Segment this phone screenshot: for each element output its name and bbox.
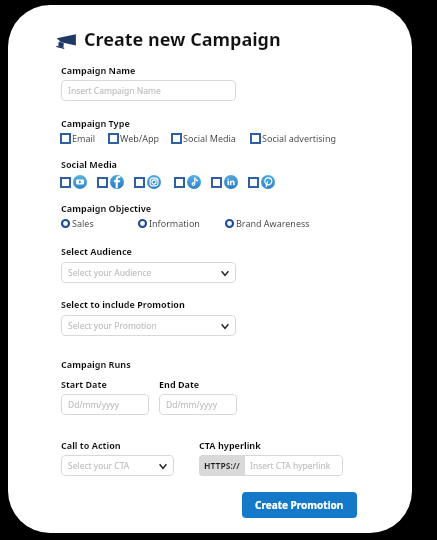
- staticText: Dd/mm/yyyy: [68, 399, 119, 411]
- button[interactable]: Brand Awareness: [225, 217, 310, 229]
- button[interactable]: HTTPS://: [199, 455, 343, 476]
- button[interactable]: Social Media: [172, 132, 236, 144]
- staticText: Campaign Objective: [61, 202, 152, 214]
- staticText: Campaign Runs: [61, 358, 131, 370]
- staticText: CTA hyperlink: [199, 439, 261, 451]
- button[interactable]: Insert Campaign Name: [61, 80, 236, 101]
- staticText: Start Date: [61, 378, 107, 390]
- staticText: Campaign Name: [61, 64, 136, 76]
- button[interactable]: Select your CTA: [61, 455, 174, 476]
- button[interactable]: LinkedIn: [212, 175, 238, 189]
- staticText: Social Media: [61, 158, 117, 170]
- button[interactable]: Information: [138, 217, 200, 229]
- staticText: Email: [72, 132, 96, 144]
- staticText: Social advertising: [262, 132, 336, 144]
- button[interactable]: Select your Promotion: [61, 315, 236, 336]
- button[interactable]: Dd/mm/yyyy: [61, 394, 149, 415]
- button[interactable]: Web/App: [109, 132, 159, 144]
- button[interactable]: TikTok: [175, 175, 201, 189]
- staticText: Information: [149, 217, 200, 229]
- staticText: Campaign Type: [61, 117, 130, 129]
- staticText: Brand Awareness: [236, 217, 310, 229]
- staticText: Create Promotion: [255, 498, 344, 512]
- button[interactable]: Create Promotion: [242, 492, 357, 518]
- button[interactable]: YouTube: [61, 175, 87, 189]
- button[interactable]: Select your Audience: [61, 262, 236, 283]
- staticText: Select your CTA: [68, 460, 130, 472]
- staticText: Insert CTA hyperlink: [250, 460, 331, 472]
- button[interactable]: Instagram: [135, 175, 161, 189]
- staticText: Sales: [72, 217, 94, 229]
- button[interactable]: Dd/mm/yyyy: [159, 394, 237, 415]
- button[interactable]: Pinterest: [249, 175, 275, 189]
- staticText: Select Audience: [61, 245, 132, 257]
- staticText: Select your Audience: [68, 267, 152, 279]
- staticText: Call to Action: [61, 439, 121, 451]
- staticText: Select your Promotion: [68, 320, 157, 332]
- button[interactable]: Sales: [61, 217, 94, 229]
- button[interactable]: Facebook: [98, 175, 124, 189]
- staticText: Select to include Promotion: [61, 298, 185, 310]
- staticText: Dd/mm/yyyy: [166, 399, 217, 411]
- staticText: HTTPS://: [204, 460, 240, 472]
- button[interactable]: Social advertising: [251, 132, 336, 144]
- button[interactable]: Email: [61, 132, 96, 144]
- staticText: Social Media: [183, 132, 236, 144]
- staticText: Web/App: [120, 132, 159, 144]
- staticText: End Date: [159, 378, 200, 390]
- staticText: Create new Campaign: [84, 27, 281, 52]
- staticText: Insert Campaign Name: [68, 85, 161, 97]
